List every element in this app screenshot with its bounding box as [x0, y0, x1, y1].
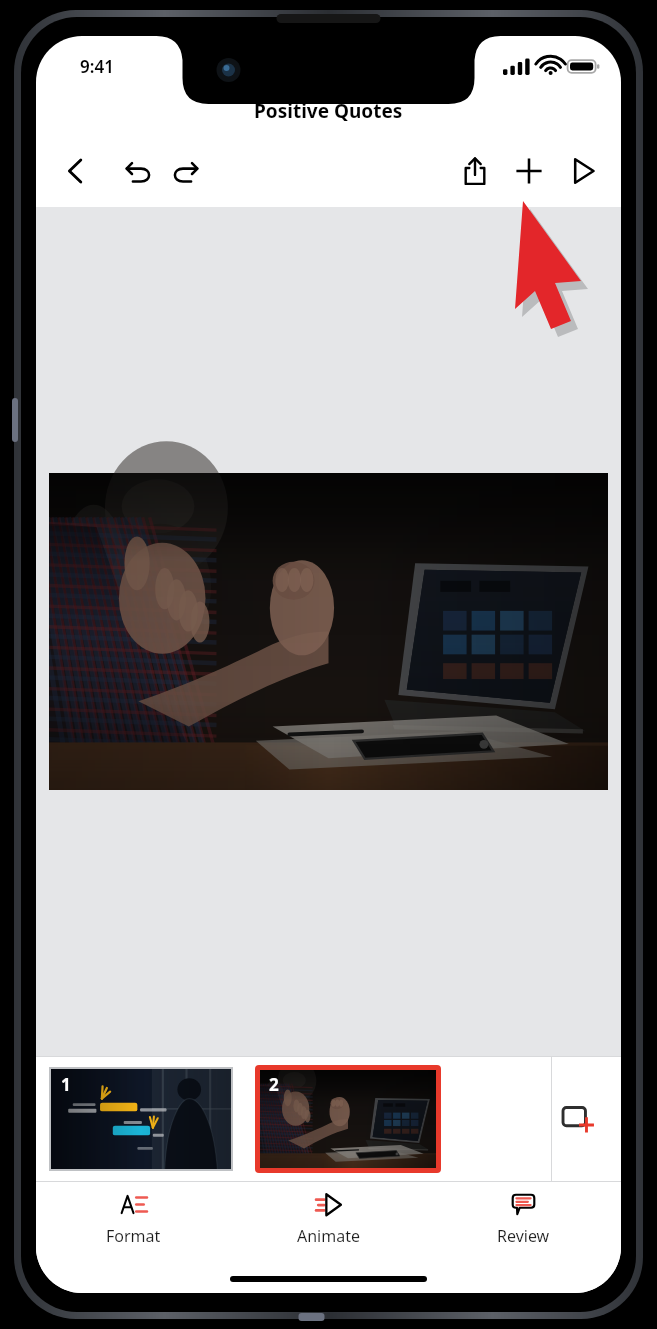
button[interactable]: Add — [507, 149, 551, 193]
button[interactable]: Back — [54, 149, 98, 193]
button[interactable]: Share — [453, 149, 497, 193]
staticText: Review — [497, 1225, 550, 1247]
staticText: 1 — [61, 1073, 71, 1096]
staticText: 2 — [269, 1073, 279, 1096]
button[interactable]: Format — [36, 1181, 231, 1257]
staticText: Positive Quotes — [254, 98, 403, 124]
staticText: Animate — [297, 1225, 360, 1247]
button[interactable]: Animate — [231, 1181, 426, 1257]
button[interactable]: Positive Quotes — [36, 88, 621, 134]
button[interactable]: Undo — [116, 149, 160, 193]
button[interactable]: 2 — [255, 1065, 441, 1173]
button[interactable]: Review — [426, 1181, 621, 1257]
staticText: 9:41 — [80, 55, 114, 78]
button[interactable]: Play — [561, 149, 605, 193]
staticText: Format — [106, 1225, 161, 1247]
button[interactable]: Redo — [164, 149, 208, 193]
button[interactable]: Add slide — [551, 1091, 607, 1147]
button[interactable]: 1 — [50, 1068, 232, 1170]
